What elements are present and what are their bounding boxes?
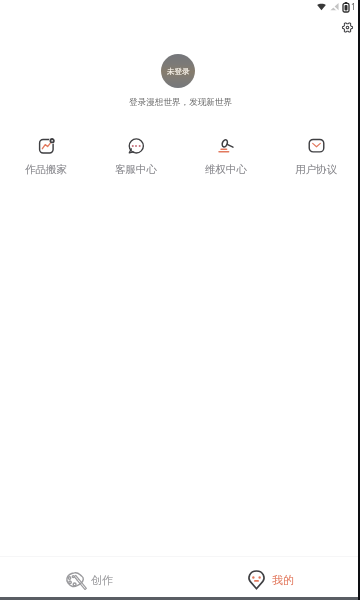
staticText: 1 bbox=[351, 1, 356, 12]
staticText: 未登录 bbox=[167, 67, 190, 76]
staticText: 维权中心 bbox=[205, 163, 247, 176]
staticText: 客服中心 bbox=[115, 163, 157, 176]
button[interactable]: 用户协议 bbox=[271, 136, 360, 176]
button[interactable]: 维权中心 bbox=[181, 136, 271, 176]
button[interactable]: 作品搬家 bbox=[1, 136, 91, 176]
button[interactable]: 未登录 bbox=[161, 54, 195, 88]
staticText: 作品搬家 bbox=[25, 163, 67, 176]
button[interactable]: 创作 bbox=[0, 557, 180, 597]
button[interactable]: Settings bbox=[334, 14, 360, 40]
staticText: 创作 bbox=[91, 573, 113, 587]
staticText: 我的 bbox=[272, 573, 294, 587]
staticText: 登录漫想世界，发现新世界 bbox=[129, 97, 233, 108]
button[interactable]: 客服中心 bbox=[91, 136, 181, 176]
staticText: 用户协议 bbox=[295, 163, 337, 176]
button[interactable]: 我的 bbox=[180, 557, 360, 597]
